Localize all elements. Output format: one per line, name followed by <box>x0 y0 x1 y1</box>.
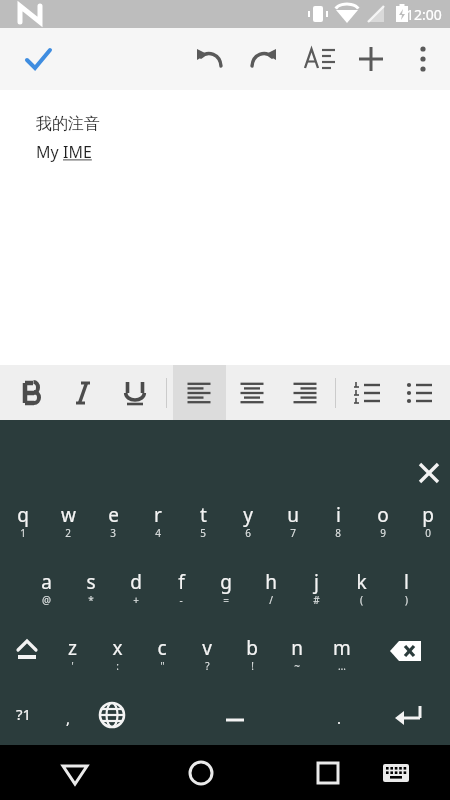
button[interactable]: m <box>320 629 364 681</box>
button[interactable]: Bold <box>7 369 55 417</box>
button[interactable]: e <box>91 496 135 548</box>
staticText: 0 <box>425 526 431 540</box>
button[interactable]: h <box>249 563 293 615</box>
staticText: ( <box>360 593 363 607</box>
button[interactable]: g <box>204 563 248 615</box>
button[interactable]: Switch input method <box>372 749 420 797</box>
staticText: a <box>41 569 52 595</box>
staticText: 4 <box>155 526 161 540</box>
staticText: IME <box>63 141 92 163</box>
staticText: l <box>404 569 409 595</box>
button[interactable]: . <box>317 696 361 740</box>
button[interactable]: v <box>185 629 229 681</box>
staticText: : <box>116 659 119 673</box>
staticText: s <box>86 569 96 595</box>
staticText: + <box>133 593 139 607</box>
staticText: ' <box>71 659 74 673</box>
button[interactable]: z <box>50 629 94 681</box>
staticText: 12:00 <box>406 5 442 24</box>
staticText: f <box>178 569 185 595</box>
staticText: z <box>68 635 77 661</box>
button[interactable]: Backspace <box>383 628 429 674</box>
staticText: k <box>356 569 367 595</box>
staticText: # <box>313 593 320 607</box>
button[interactable]: Underline <box>111 369 159 417</box>
staticText: ?1 <box>16 704 32 724</box>
button[interactable]: w <box>46 496 90 548</box>
staticText: p <box>422 502 434 528</box>
staticText: y <box>243 502 253 528</box>
staticText: " <box>160 659 165 673</box>
staticText: - <box>179 593 183 607</box>
button[interactable]: Space <box>135 692 335 738</box>
button[interactable]: More options <box>399 35 447 83</box>
staticText: * <box>88 593 94 607</box>
button[interactable]: a <box>24 563 68 615</box>
button[interactable]: Recents <box>304 749 352 797</box>
button[interactable]: s <box>69 563 113 615</box>
button[interactable]: Done <box>14 35 62 83</box>
staticText: u <box>287 502 299 528</box>
staticText: ! <box>251 659 254 673</box>
button[interactable]: Enter <box>385 692 431 738</box>
button[interactable]: i <box>316 496 360 548</box>
button[interactable]: f <box>159 563 203 615</box>
button[interactable]: Align right <box>281 369 329 417</box>
button[interactable]: q <box>1 496 45 548</box>
button[interactable]: Bulleted list <box>395 369 443 417</box>
staticText: @ <box>42 593 51 607</box>
staticText: 6 <box>245 526 251 540</box>
staticText: b <box>246 635 258 661</box>
staticText: ) <box>405 593 408 607</box>
staticText: h <box>265 569 277 595</box>
staticText: g <box>220 569 232 595</box>
staticText: d <box>130 569 142 595</box>
staticText: , <box>66 708 71 728</box>
button[interactable]: l <box>384 563 428 615</box>
button[interactable]: y <box>226 496 270 548</box>
staticText: 3 <box>110 526 116 540</box>
button[interactable]: Text format <box>294 35 342 83</box>
button[interactable]: Add <box>347 35 395 83</box>
button[interactable]: u <box>271 496 315 548</box>
button[interactable]: j <box>294 563 338 615</box>
button[interactable]: Align left <box>175 369 223 417</box>
button[interactable]: c <box>140 629 184 681</box>
button[interactable]: Undo <box>186 35 234 83</box>
staticText: = <box>223 593 229 607</box>
button[interactable]: Align center <box>228 369 276 417</box>
staticText: j <box>314 569 319 595</box>
button[interactable]: d <box>114 563 158 615</box>
button[interactable]: Hide keyboard <box>405 449 450 497</box>
staticText: ? <box>205 659 210 673</box>
button[interactable]: Numbered list <box>343 369 391 417</box>
button[interactable]: ?1 <box>2 692 46 736</box>
button[interactable]: Shift <box>4 628 50 674</box>
staticText: x <box>112 635 123 661</box>
button[interactable]: x <box>95 629 139 681</box>
button[interactable]: o <box>361 496 405 548</box>
staticText: o <box>377 502 389 528</box>
staticText: r <box>154 502 162 528</box>
button[interactable]: r <box>136 496 180 548</box>
staticText: 1 <box>20 526 26 540</box>
staticText: 我的注音 <box>36 114 100 134</box>
button[interactable]: Redo <box>239 35 287 83</box>
button[interactable]: , <box>46 696 90 740</box>
button[interactable]: Home <box>177 749 225 797</box>
button[interactable]: p <box>406 496 450 548</box>
button[interactable]: Change keyboard <box>89 692 135 738</box>
staticText: 2 <box>65 526 71 540</box>
staticText: … <box>338 659 346 673</box>
button[interactable]: Italic <box>59 369 107 417</box>
staticText: m <box>333 635 351 661</box>
button[interactable]: n <box>275 629 319 681</box>
button[interactable]: t <box>181 496 225 548</box>
button[interactable]: Back <box>51 749 99 797</box>
staticText: 7 <box>290 526 296 540</box>
staticText: ~ <box>294 659 300 673</box>
button[interactable]: k <box>339 563 383 615</box>
staticText: 5 <box>200 526 206 540</box>
button[interactable]: b <box>230 629 274 681</box>
staticText: e <box>108 502 119 528</box>
